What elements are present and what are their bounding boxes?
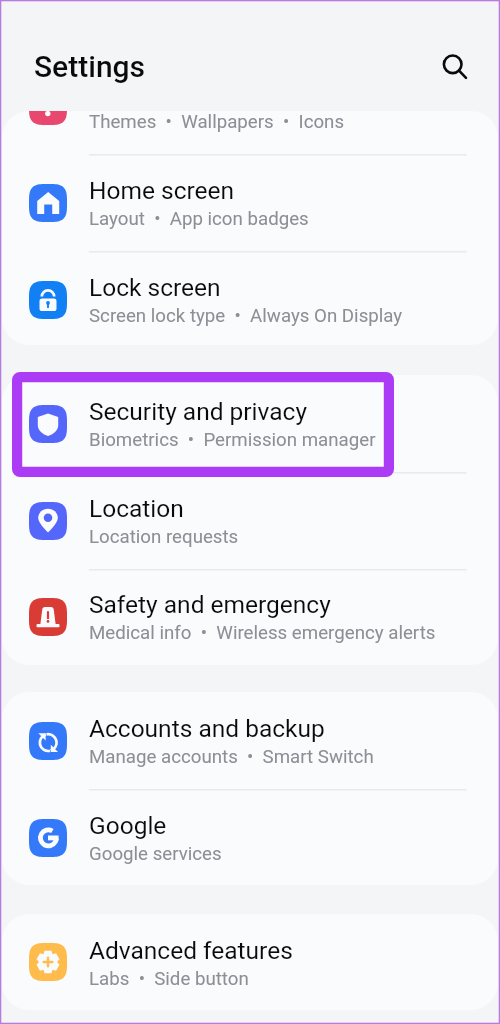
staticText: Google <box>89 811 167 840</box>
staticText: Lock screen <box>89 273 221 302</box>
staticText: Screen lock type • Always On Display <box>89 305 403 327</box>
button[interactable]: Themes <box>2 111 498 154</box>
button[interactable]: Location <box>2 472 498 569</box>
button[interactable]: Safety and emergency <box>2 568 498 665</box>
button[interactable]: Advanced features <box>2 914 498 1010</box>
staticText: Location requests <box>89 526 239 548</box>
staticText: Safety and emergency <box>89 590 331 619</box>
button[interactable]: Lock screen <box>2 251 498 345</box>
button[interactable]: Accounts and backup <box>2 692 498 789</box>
staticText: Layout • App icon badges <box>89 208 309 230</box>
button[interactable]: Security and privacy <box>2 375 498 472</box>
button[interactable]: Google <box>2 789 498 885</box>
staticText: Themes • Wallpapers • Icons <box>89 111 345 133</box>
staticText: Medical info • Wireless emergency alerts <box>89 622 436 644</box>
staticText: Settings <box>34 49 146 84</box>
staticText: Location <box>89 494 184 523</box>
staticText: Labs • Side button <box>89 968 249 990</box>
staticText: Biometrics • Permission manager <box>89 429 376 451</box>
button[interactable]: Home screen <box>2 154 498 251</box>
staticText: Accounts and backup <box>89 714 325 743</box>
staticText: Google services <box>89 843 222 865</box>
staticText: Advanced features <box>89 936 293 965</box>
button[interactable]: Search <box>429 41 476 88</box>
staticText: Security and privacy <box>89 397 308 426</box>
staticText: Manage accounts • Smart Switch <box>89 746 374 768</box>
staticText: Home screen <box>89 176 235 205</box>
